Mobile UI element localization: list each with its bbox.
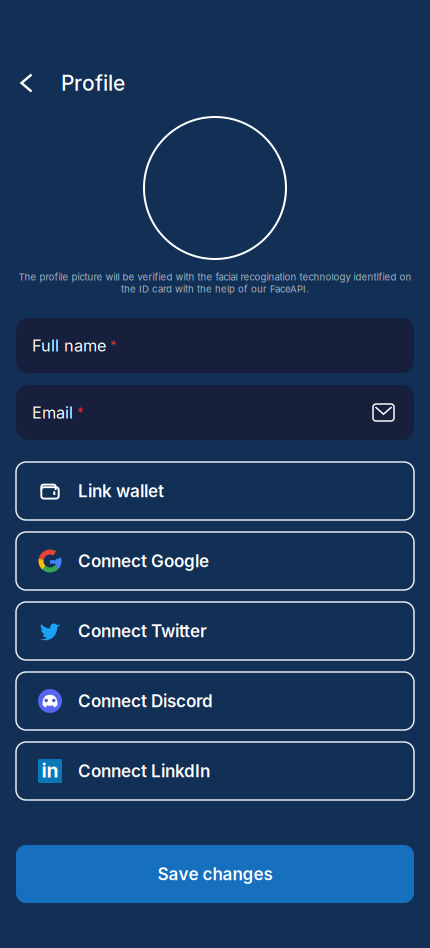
- button[interactable]: Back: [0, 61, 61, 105]
- staticText: Connect Google: [78, 551, 209, 571]
- staticText: Full name: [32, 336, 106, 355]
- staticText: Save changes: [157, 864, 272, 884]
- staticText: Email: [32, 403, 73, 422]
- button[interactable]: Connect Google: [16, 532, 414, 590]
- staticText: Profile: [61, 70, 125, 96]
- button[interactable]: Connect Discord: [16, 672, 414, 730]
- staticText: *: [73, 404, 84, 420]
- staticText: Connect Discord: [78, 691, 213, 711]
- staticText: *: [106, 337, 117, 353]
- staticText: Connect LinkdIn: [78, 761, 210, 781]
- staticText: The profile picture will be verified wit…: [18, 271, 411, 283]
- button[interactable]: in: [16, 742, 414, 800]
- staticText: Link wallet: [78, 481, 164, 501]
- staticText: Connect Twitter: [78, 621, 207, 641]
- button[interactable]: Save changes: [0, 845, 430, 903]
- staticText: the ID card with the help of our FaceAPI…: [121, 283, 309, 295]
- button[interactable]: Link wallet: [16, 462, 414, 520]
- button[interactable]: Connect Twitter: [16, 602, 414, 660]
- staticText: in: [41, 759, 58, 782]
